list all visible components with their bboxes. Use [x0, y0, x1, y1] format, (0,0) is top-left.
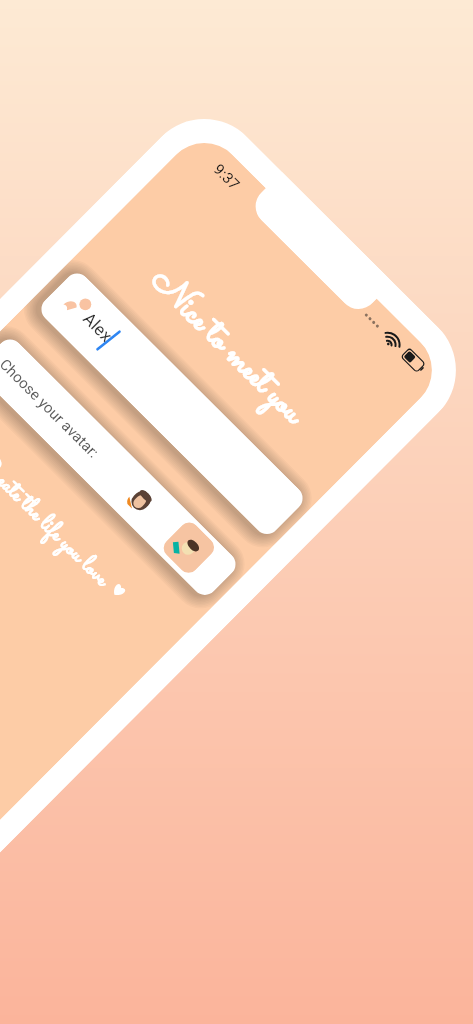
staticText: Create the life you love [0, 446, 118, 595]
staticText: Create the life you love [0, 446, 118, 595]
button[interactable]: Alex [36, 268, 308, 539]
staticText: Nice to meet you [136, 257, 317, 438]
staticText: Alex [79, 308, 117, 346]
staticText: Nice to meet you [136, 257, 317, 438]
button[interactable]: Choose avatar 1 [112, 472, 170, 530]
button[interactable]: Choose avatar 2 [159, 518, 218, 577]
staticText: 9:37 [210, 160, 243, 194]
staticText: Choose your avatar: [0, 355, 103, 462]
